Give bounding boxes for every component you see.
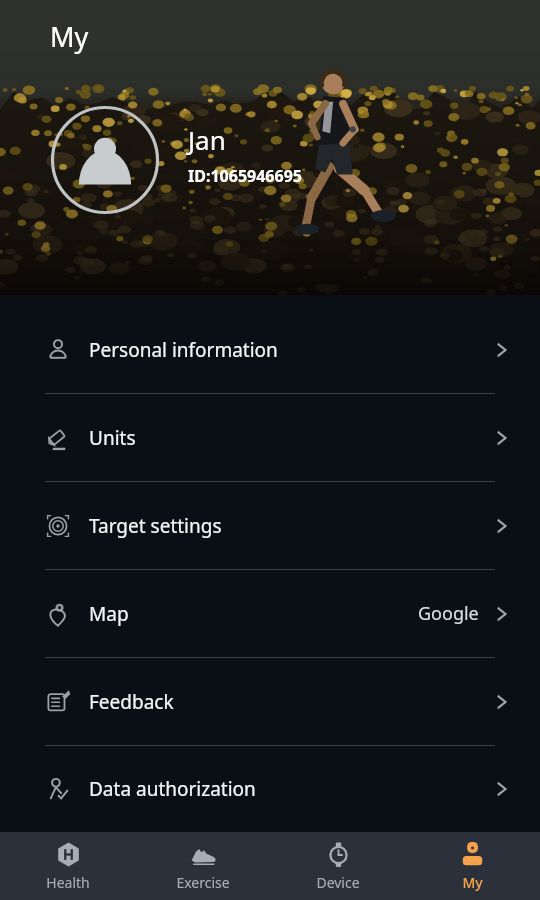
button[interactable]: Exercise — [176, 832, 230, 900]
button[interactable]: Map — [0, 570, 540, 658]
staticText: ID:1065946695 — [188, 165, 302, 187]
staticText: Device — [316, 873, 360, 892]
button[interactable]: Device — [316, 832, 360, 900]
staticText: Target settings — [89, 513, 222, 539]
staticText: Personal information — [89, 337, 278, 363]
staticText: Google — [418, 601, 479, 626]
staticText: Map — [89, 601, 129, 627]
button[interactable]: Personal information — [0, 306, 540, 394]
button[interactable]: Units — [0, 394, 540, 482]
staticText: Exercise — [176, 873, 230, 892]
staticText: Units — [89, 425, 136, 451]
staticText: Health — [46, 873, 90, 892]
button[interactable]: Feedback — [0, 658, 540, 746]
button[interactable]: Data authorization — [0, 746, 540, 832]
button[interactable]: My — [459, 832, 486, 900]
button[interactable]: Profile picture — [50, 105, 160, 215]
staticText: My — [462, 873, 483, 892]
button[interactable]: Target settings — [0, 482, 540, 570]
staticText: My — [50, 18, 89, 55]
staticText: Feedback — [89, 689, 174, 715]
staticText: Jan — [188, 122, 226, 157]
staticText: Data authorization — [89, 776, 256, 802]
button[interactable]: Health — [46, 832, 90, 900]
